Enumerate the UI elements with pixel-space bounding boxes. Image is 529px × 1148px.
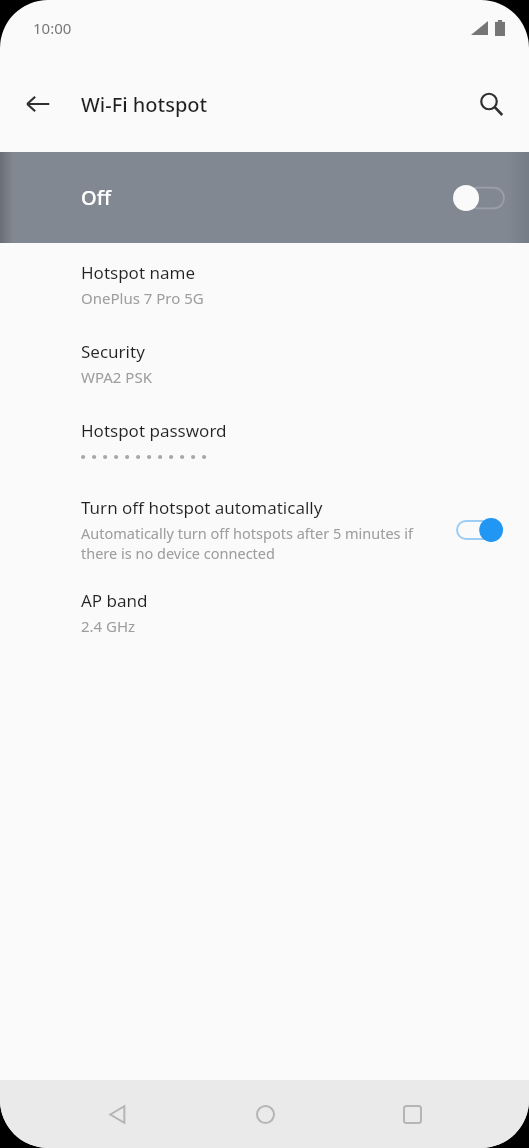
button[interactable]: Turn off hotspot automatically toggle — [453, 513, 507, 547]
button[interactable]: Hotspot name — [0, 261, 529, 308]
staticText: OnePlus 7 Pro 5G — [81, 288, 204, 308]
staticText: WPA2 PSK — [81, 367, 152, 387]
button[interactable]: Hotspot password — [0, 419, 529, 462]
staticText: Wi-Fi hotspot — [81, 91, 208, 118]
staticText: Turn off hotspot automatically — [81, 496, 323, 519]
staticText: Automatically turn off hotspots after 5 … — [81, 523, 441, 563]
button[interactable]: Search — [465, 78, 517, 130]
button[interactable]: Back — [12, 78, 64, 130]
staticText: Hotspot name — [81, 261, 195, 284]
staticText: 10:00 — [33, 18, 72, 38]
button[interactable]: Turn off hotspot automatically — [0, 496, 529, 563]
staticText: 2.4 GHz — [81, 616, 136, 636]
button[interactable]: Back — [90, 1087, 144, 1141]
button[interactable]: Security — [0, 340, 529, 387]
staticText: Security — [81, 340, 145, 363]
button[interactable]: Off — [0, 152, 529, 243]
button[interactable]: Home — [238, 1087, 292, 1141]
staticText: Hotspot password — [81, 419, 227, 442]
button[interactable]: Recent apps — [385, 1087, 439, 1141]
staticText: AP band — [81, 589, 148, 612]
button[interactable]: AP band — [0, 589, 529, 636]
staticText: Off — [81, 184, 111, 211]
